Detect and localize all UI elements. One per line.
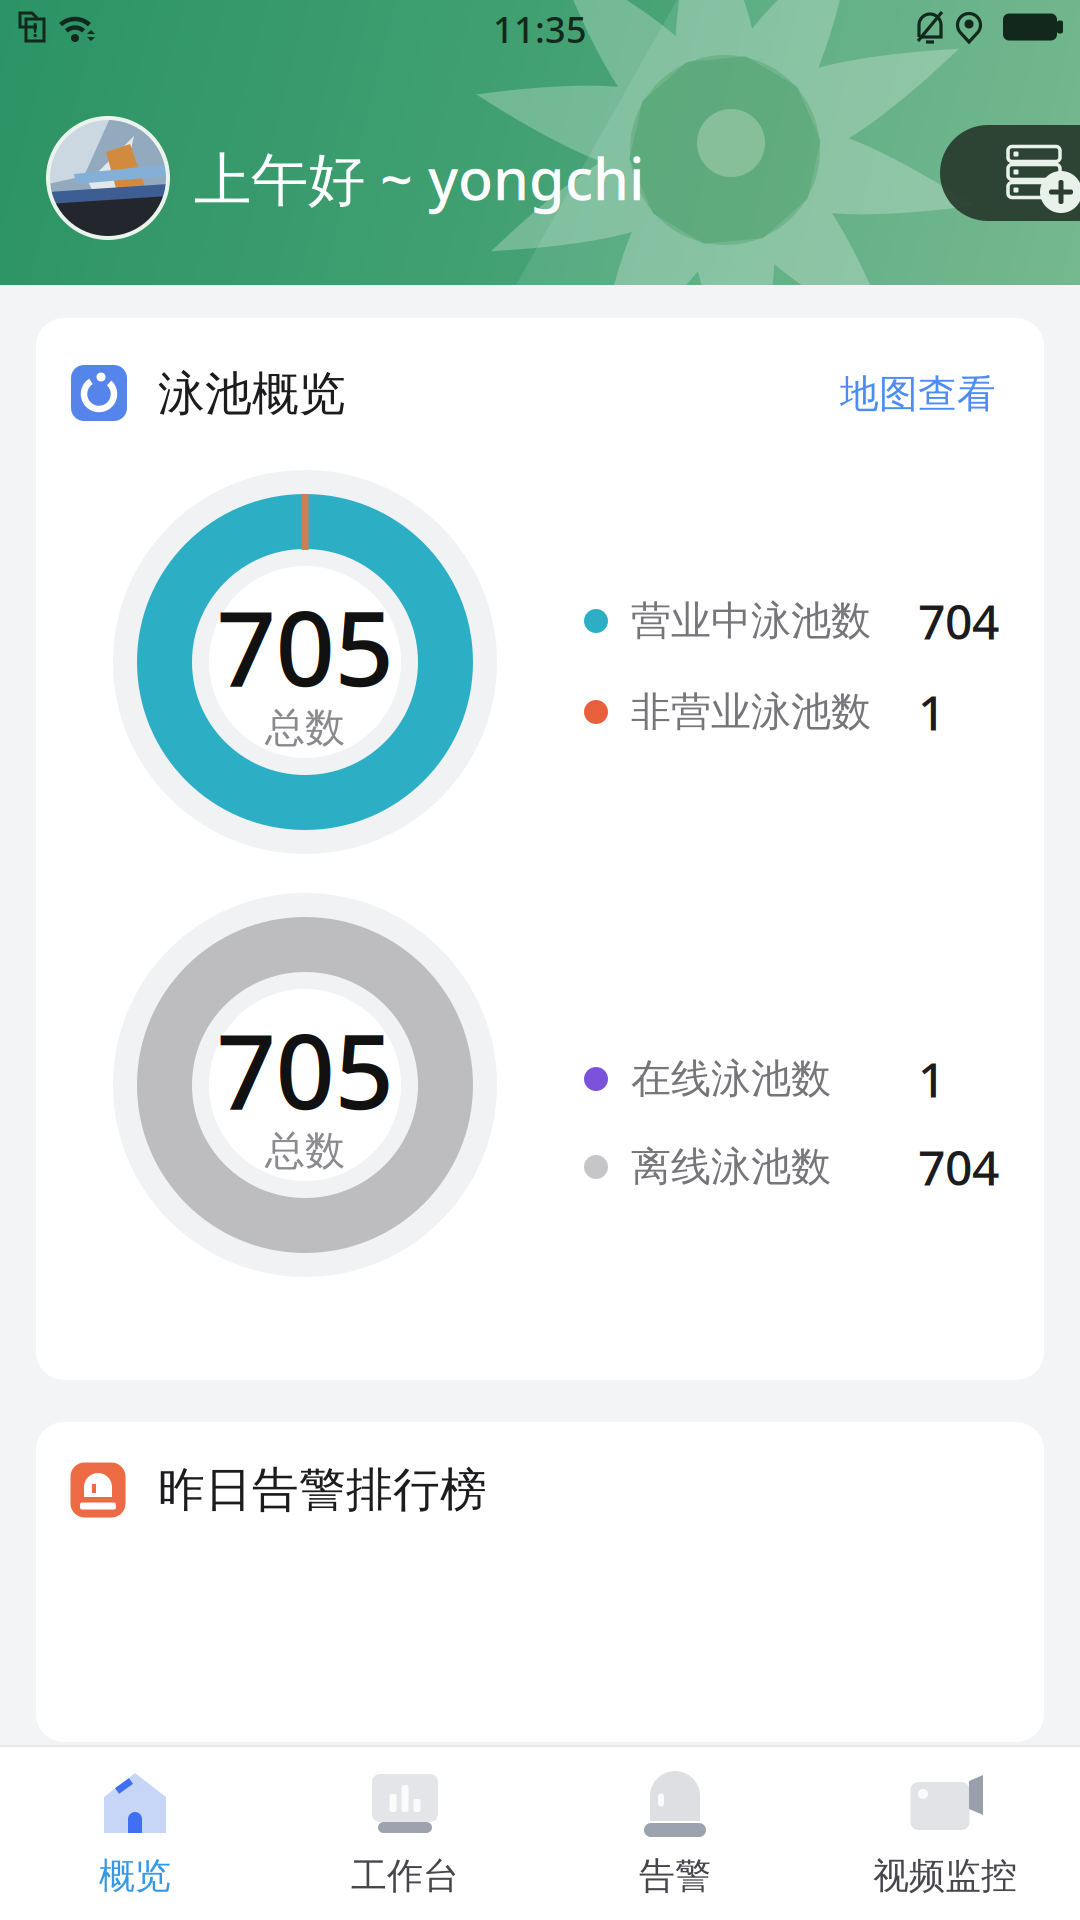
staticText: 概览 (99, 1854, 171, 1898)
staticText: 11:35 (493, 5, 587, 53)
staticText: 总数 (265, 703, 345, 752)
staticText: 在线泳池数 (631, 1054, 831, 1103)
staticText: 1 (918, 1047, 945, 1111)
staticText: 总数 (265, 1126, 345, 1175)
staticText: ! (32, 18, 37, 42)
button[interactable]: 告警 (550, 1750, 800, 1915)
staticText: 705 (216, 577, 393, 715)
staticText: 非营业泳池数 (631, 687, 871, 736)
staticText: 营业中泳池数 (631, 596, 871, 645)
button[interactable]: 地图查看 (808, 362, 1028, 426)
staticText: 上午好 ~ yongchi (194, 140, 644, 216)
button[interactable]: 个人头像 (48, 118, 168, 238)
button[interactable]: 视频监控 (820, 1750, 1070, 1915)
staticText: 704 (918, 1135, 999, 1199)
staticText: 705 (216, 1000, 393, 1138)
button[interactable]: 添加设备 (940, 125, 1080, 221)
staticText: 昨日告警排行榜 (158, 1461, 487, 1519)
staticText: 地图查看 (840, 370, 996, 418)
staticText: 离线泳池数 (631, 1142, 831, 1191)
staticText: 泳池概览 (158, 365, 346, 423)
staticText: 告警 (639, 1854, 711, 1898)
staticText: 704 (918, 589, 999, 653)
button[interactable]: 概览 (10, 1750, 260, 1915)
staticText: 工作台 (351, 1854, 459, 1898)
staticText: 视频监控 (873, 1854, 1017, 1898)
button[interactable]: 工作台 (280, 1750, 530, 1915)
staticText: 1 (918, 680, 945, 744)
